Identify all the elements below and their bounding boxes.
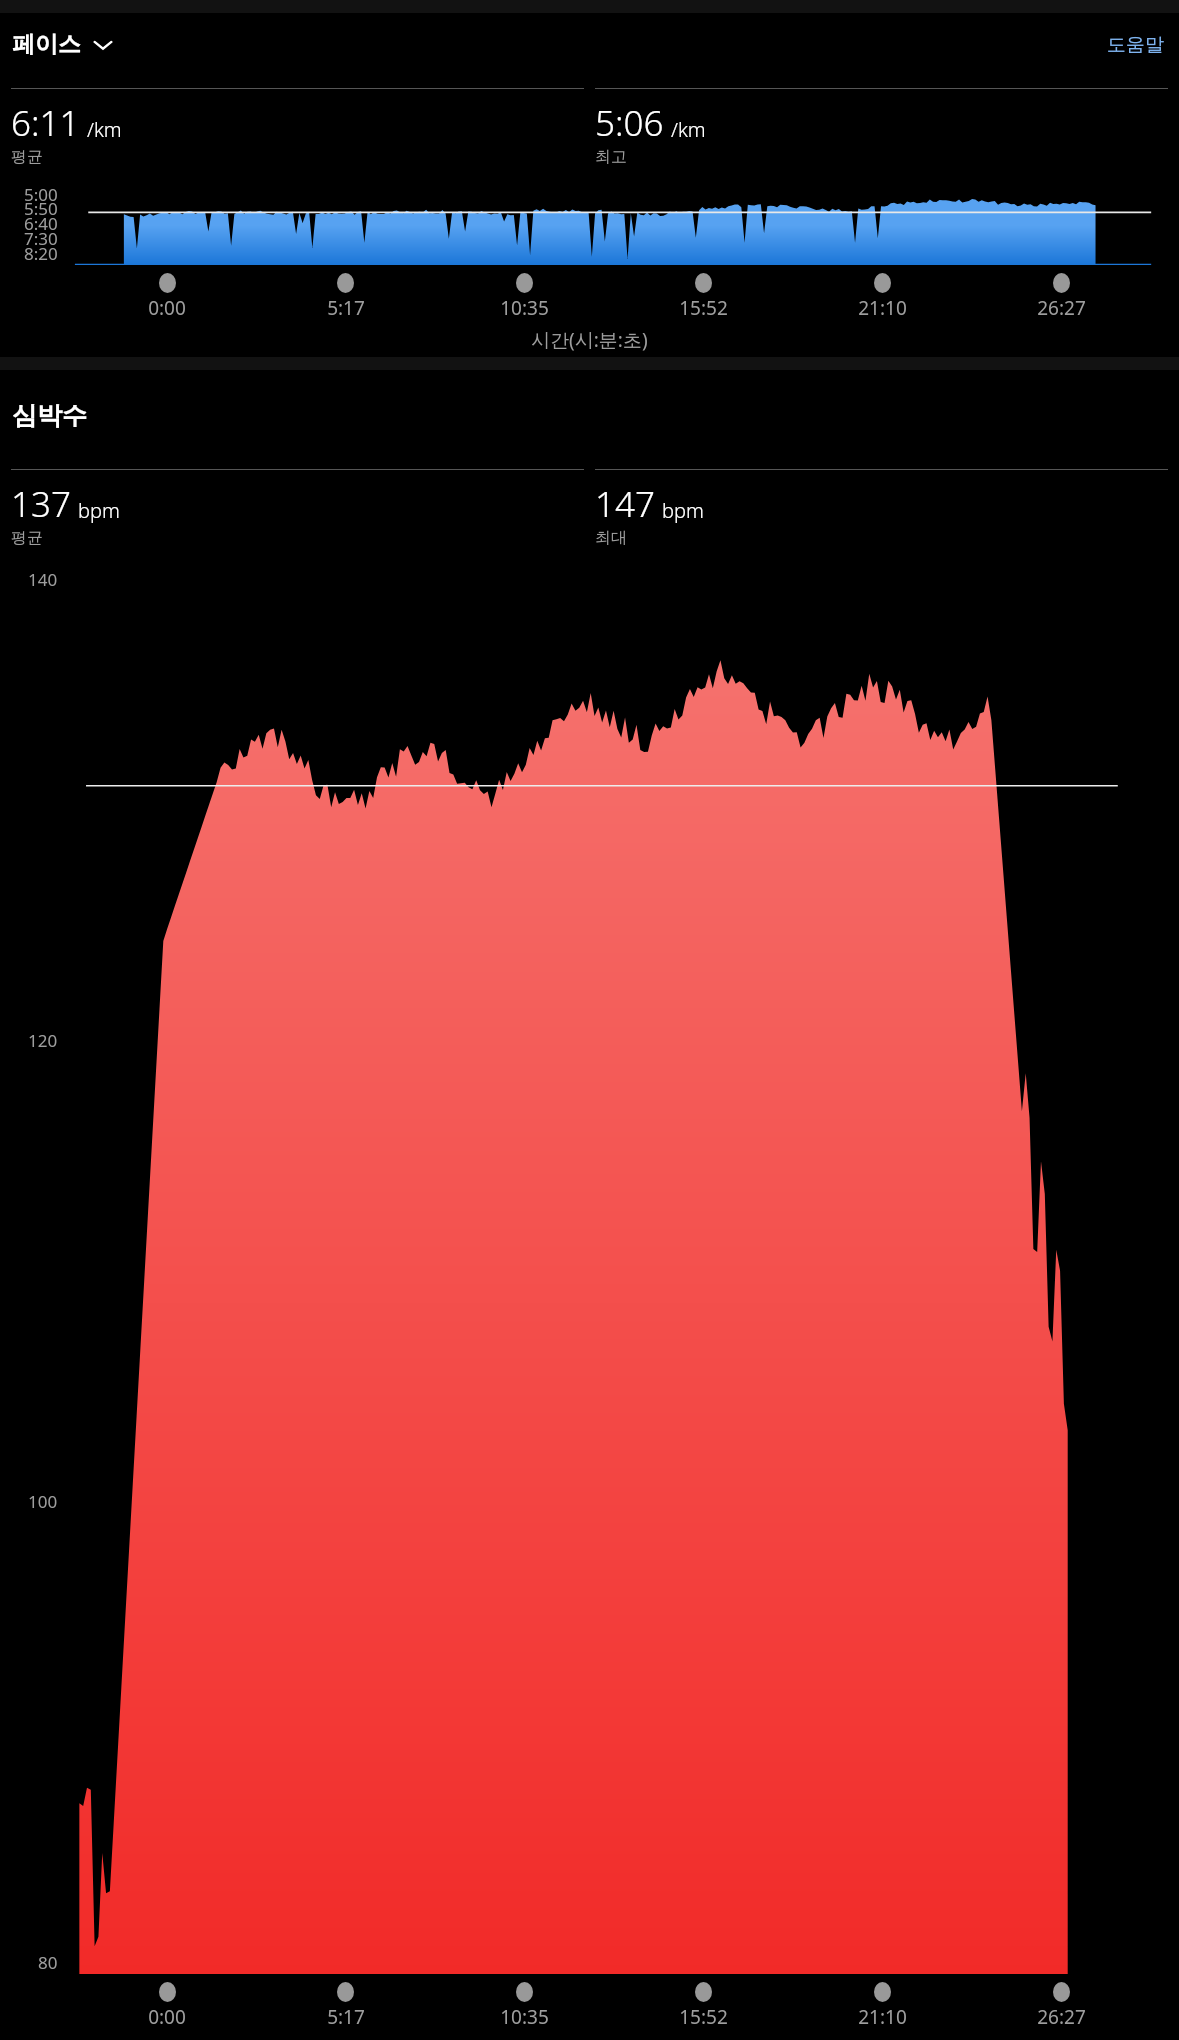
staticText: 평균 [11, 147, 43, 167]
staticText: 137 [11, 480, 71, 528]
staticText: 최고 [595, 147, 627, 167]
button[interactable]: 5:06 [595, 88, 1168, 167]
staticText: 5:17 [327, 2004, 365, 2030]
staticText: 26:27 [1037, 295, 1086, 321]
staticText: 10:35 [500, 2004, 549, 2030]
staticText: 6:11 [11, 99, 80, 147]
staticText: bpm [78, 497, 120, 524]
staticText: 80 [38, 1951, 58, 1974]
button[interactable]: 도움말 [1101, 26, 1170, 64]
staticText: 5:00 [24, 183, 58, 206]
staticText: 0:00 [148, 2004, 186, 2030]
staticText: 26:27 [1037, 2004, 1086, 2030]
staticText: 120 [28, 1029, 58, 1052]
staticText: 심박수 [12, 400, 87, 431]
staticText: 6:40 [24, 212, 58, 235]
staticText: bpm [662, 497, 704, 524]
staticText: 최대 [595, 528, 627, 548]
staticText: 140 [28, 568, 58, 591]
staticText: 5:17 [327, 295, 365, 321]
staticText: /km [87, 116, 122, 143]
staticText: 15:52 [679, 295, 728, 321]
staticText: 10:35 [500, 295, 549, 321]
staticText: 도움말 [1107, 33, 1164, 57]
staticText: 5:06 [595, 99, 664, 147]
button[interactable]: 147 [595, 469, 1168, 548]
button[interactable]: 137 [11, 469, 584, 548]
staticText: 시간(시:분:초) [531, 327, 648, 353]
staticText: 5:50 [24, 197, 58, 220]
staticText: 147 [595, 480, 655, 528]
staticText: 100 [28, 1490, 58, 1513]
staticText: 15:52 [679, 2004, 728, 2030]
staticText: 0:00 [148, 295, 186, 321]
staticText: 7:30 [24, 227, 58, 250]
staticText: /km [671, 116, 706, 143]
button[interactable]: 페이스 [9, 23, 116, 66]
staticText: 21:10 [858, 2004, 907, 2030]
staticText: 8:20 [24, 242, 58, 265]
staticText: 평균 [11, 528, 43, 548]
button[interactable]: 6:11 [11, 88, 584, 167]
staticText: 21:10 [858, 295, 907, 321]
staticText: 페이스 [12, 30, 81, 59]
